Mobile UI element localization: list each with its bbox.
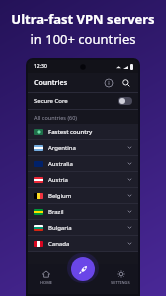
- staticText: Belgium: [48, 192, 72, 200]
- button[interactable]: Brazil: [28, 204, 138, 219]
- button[interactable]: SETTINGS: [103, 268, 138, 294]
- button[interactable]: Secure Core: [28, 93, 138, 109]
- staticText: Argentina: [48, 144, 76, 152]
- staticText: Ultra-fast VPN servers: [11, 10, 155, 28]
- button[interactable]: Fastest country: [28, 124, 138, 139]
- button[interactable]: Australia: [28, 156, 138, 171]
- button[interactable]: Bulgaria: [28, 220, 138, 235]
- button[interactable]: Info: [102, 76, 115, 89]
- staticText: Australia: [48, 160, 73, 168]
- button[interactable]: Argentina: [28, 140, 138, 155]
- staticText: HOME: [40, 280, 53, 285]
- staticText: Secure Core: [34, 97, 68, 105]
- staticText: 12:30: [34, 63, 47, 70]
- staticText: in 100+ countries: [30, 30, 136, 48]
- button[interactable]: Search: [119, 76, 132, 89]
- button[interactable]: Connect: [71, 257, 95, 281]
- button[interactable]: Canada: [28, 236, 138, 251]
- staticText: All countries (60): [34, 114, 77, 121]
- staticText: Brazil: [48, 208, 64, 216]
- staticText: Austria: [48, 176, 68, 184]
- staticText: Countries: [34, 78, 68, 88]
- staticText: Fastest country: [48, 128, 93, 136]
- button[interactable]: HOME: [28, 268, 64, 294]
- staticText: SETTINGS: [111, 280, 130, 285]
- staticText: Bulgaria: [48, 224, 72, 232]
- button[interactable]: Austria: [28, 172, 138, 187]
- staticText: Canada: [48, 240, 70, 248]
- button[interactable]: Belgium: [28, 188, 138, 203]
